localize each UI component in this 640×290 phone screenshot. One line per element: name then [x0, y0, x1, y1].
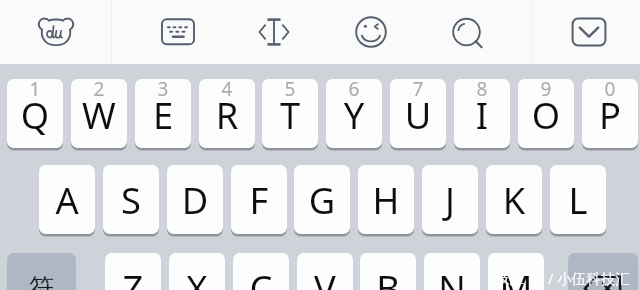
button[interactable]: Backspace	[568, 253, 638, 290]
button[interactable]: H	[358, 165, 414, 234]
staticText: 6	[326, 79, 382, 102]
staticText: A	[39, 175, 95, 224]
button[interactable]: 7	[390, 79, 446, 148]
button[interactable]: J	[422, 165, 478, 234]
staticText: V	[297, 263, 353, 290]
staticText: I	[454, 90, 510, 139]
staticText: 7	[390, 79, 446, 102]
staticText: 2	[71, 79, 127, 102]
staticText: 5	[262, 79, 318, 102]
staticText: M	[488, 263, 544, 290]
button[interactable]: 符	[7, 253, 76, 290]
staticText: L	[550, 175, 606, 224]
button[interactable]: L	[550, 165, 606, 234]
button[interactable]: M	[488, 253, 544, 290]
button[interactable]: K	[486, 165, 542, 234]
staticText: K	[486, 175, 542, 224]
button[interactable]: 2	[71, 79, 127, 148]
staticText: / 小伍科技汇	[548, 268, 630, 288]
staticText: 1	[7, 79, 63, 102]
button[interactable]: 4	[199, 79, 255, 148]
button[interactable]: A	[39, 165, 95, 234]
staticText: Q	[7, 90, 63, 139]
button[interactable]: N	[424, 253, 480, 290]
button[interactable]: B	[360, 253, 416, 290]
staticText: G	[294, 175, 350, 224]
staticText: Z	[105, 263, 161, 290]
staticText: Y	[326, 90, 382, 139]
button[interactable]: 8	[454, 79, 510, 148]
button[interactable]: D	[167, 165, 223, 234]
button[interactable]: Hide keyboard	[559, 0, 619, 64]
staticText: O	[518, 90, 574, 139]
staticText: T	[262, 90, 318, 139]
button[interactable]: Emoji	[341, 0, 401, 64]
staticText: E	[135, 90, 191, 139]
button[interactable]: S	[103, 165, 159, 234]
button[interactable]: 9	[518, 79, 574, 148]
staticText: D	[167, 175, 223, 224]
staticText: X	[169, 263, 225, 290]
button[interactable]: Keyboard layout	[148, 0, 208, 64]
button[interactable]: 3	[135, 79, 191, 148]
staticText: H	[358, 175, 414, 224]
staticText: R	[199, 90, 255, 139]
staticText: 3	[135, 79, 191, 102]
button[interactable]: X	[169, 253, 225, 290]
staticText: S	[103, 175, 159, 224]
staticText: 符	[29, 272, 54, 290]
staticText: 技汇	[495, 269, 524, 287]
button[interactable]: V	[297, 253, 353, 290]
staticText: 9	[518, 79, 574, 102]
button[interactable]: 1	[7, 79, 63, 148]
button[interactable]: G	[294, 165, 350, 234]
button[interactable]: Z	[105, 253, 161, 290]
staticText: 8	[454, 79, 510, 102]
staticText: 0	[582, 79, 638, 102]
staticText: P	[582, 90, 638, 139]
button[interactable]: 6	[326, 79, 382, 148]
staticText: C	[233, 263, 289, 290]
button[interactable]: 0	[582, 79, 638, 148]
button[interactable]: Move cursor	[244, 0, 304, 64]
button[interactable]: Search	[437, 0, 497, 64]
staticText: N	[424, 263, 480, 290]
staticText: B	[360, 263, 416, 290]
staticText: U	[390, 90, 446, 139]
staticText: F	[231, 175, 287, 224]
button[interactable]: F	[231, 165, 287, 234]
staticText: 4	[199, 79, 255, 102]
button[interactable]: Baidu input	[26, 0, 86, 64]
button[interactable]: C	[233, 253, 289, 290]
staticText: W	[71, 90, 127, 139]
button[interactable]: 5	[262, 79, 318, 148]
staticText: J	[422, 175, 478, 224]
